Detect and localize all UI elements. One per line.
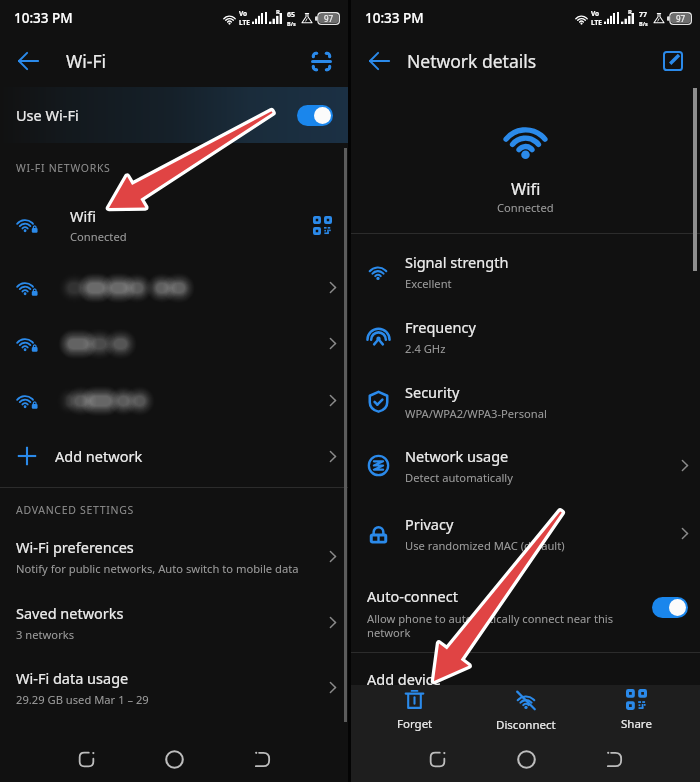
button[interactable]: Share network [300,203,344,247]
button[interactable]: Forget [359,685,470,736]
button[interactable] [0,259,348,316]
button[interactable] [0,315,348,372]
staticText: Saved networks [16,603,124,623]
staticText: Excellent [405,276,452,291]
button[interactable]: Network usage [351,434,700,496]
staticText: Add network [55,446,143,466]
staticText: Forget [397,716,433,732]
button[interactable]: Back [357,39,401,83]
button[interactable]: Saved networks [0,590,348,654]
staticText: 97 [676,13,686,24]
staticText: Notify for public networks, Auto switch … [16,561,299,576]
staticText: ADVANCED SETTINGS [16,503,135,517]
button[interactable]: Toggle [297,105,333,126]
staticText: LTE [591,18,602,27]
staticText: Add device [367,669,441,689]
staticText: Allow phone to automatically connect nea… [367,611,617,640]
button[interactable]: Add network [0,430,348,482]
staticText: 65 [287,10,296,20]
staticText: 29.29 GB used Mar 1 – 29 [16,692,149,707]
button[interactable]: Disconnect [470,685,581,736]
staticText: LTE [239,18,250,27]
staticText: Wi-Fi [66,49,107,73]
button[interactable]: Recents [42,736,130,782]
button[interactable] [0,372,348,429]
staticText: WI-FI NETWORKS [16,161,111,175]
button[interactable]: Wi-Fi data usage [0,655,348,719]
staticText: Use Wi-Fi [16,105,79,125]
button[interactable]: Use Wi-Fi [0,87,348,143]
button[interactable]: Wi-Fi preferences [0,524,348,588]
button[interactable]: Share [581,685,692,736]
staticText: Security [405,382,460,402]
button[interactable]: Back [6,39,50,83]
button[interactable]: Back [570,736,658,782]
staticText: WPA/WPA2/WPA3-Personal [405,406,547,421]
staticText: Signal strength [405,252,509,272]
staticText: Wifi [511,177,541,199]
staticText: B/s [287,20,296,27]
button[interactable]: Home [482,736,570,782]
staticText: Auto-connect [367,586,458,606]
staticText: 3 networks [16,627,75,642]
button[interactable]: Edit [651,39,695,83]
button[interactable]: Scan QR code [299,39,343,83]
button[interactable]: Signal strength [351,240,700,302]
staticText: Disconnect [496,717,556,733]
staticText: Use randomized MAC (default) [405,538,565,553]
button[interactable]: Security [351,370,700,432]
staticText: B/s [639,20,648,27]
staticText: Network usage [405,446,509,466]
staticText: Wi-Fi data usage [16,668,129,688]
button[interactable]: Home [130,736,218,782]
staticText: Wi-Fi preferences [16,537,134,557]
staticText: 2.4 GHz [405,341,446,356]
staticText: Connected [497,200,554,215]
staticText: Connected [70,229,127,244]
staticText: Vo [591,9,600,18]
staticText: 97 [324,13,334,24]
button[interactable]: Toggle [652,597,688,618]
staticText: Wifi [70,206,96,226]
staticText: Privacy [405,514,454,534]
staticText: Frequency [405,317,476,337]
button[interactable]: Frequency [351,305,700,367]
button[interactable]: Wifi [0,196,348,254]
staticText: Vo [239,9,248,18]
staticText: 10:33 PM [14,9,73,27]
staticText: R [628,8,632,16]
button[interactable]: Back [218,736,306,782]
staticText: 10:33 PM [365,9,424,27]
staticText: 77 [639,10,648,20]
button[interactable]: Recents [393,736,482,782]
button[interactable]: Privacy [351,502,700,564]
staticText: Detect automatically [405,470,513,485]
button[interactable]: Auto-connect [351,572,700,644]
staticText: Share [621,716,652,732]
staticText: Network details [407,49,537,73]
staticText: R [276,8,280,16]
